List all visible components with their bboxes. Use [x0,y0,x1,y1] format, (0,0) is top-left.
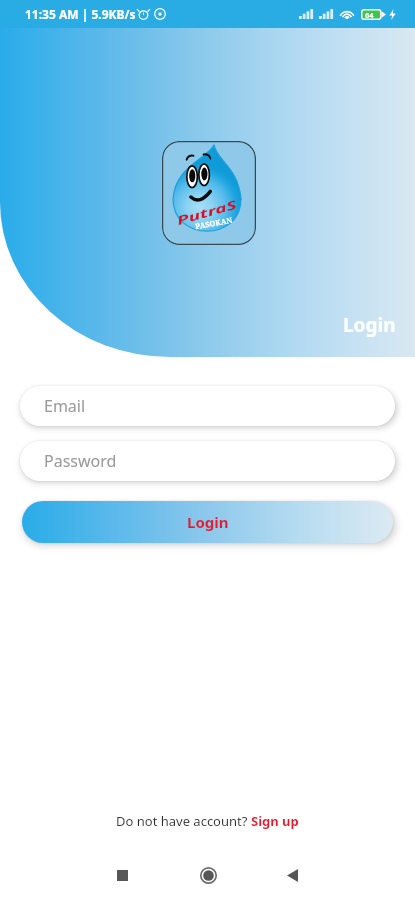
staticText: Login [343,312,396,338]
button[interactable]: Password [20,441,395,481]
staticText: PASOKAN [194,215,234,231]
button[interactable]: Sign up [251,812,299,830]
staticText: Password [44,450,117,472]
button[interactable]: Home [186,853,230,897]
staticText: PutraS [175,196,239,228]
button[interactable]: Recents [100,853,144,897]
button[interactable]: Login [22,501,393,543]
staticText: Sign up [251,812,299,830]
staticText: Do not have account? [116,812,251,830]
staticText: 11:35 AM | 5.9KB/s [25,6,136,22]
staticText: 64 [365,10,374,20]
button[interactable]: Email [20,386,395,426]
button[interactable]: Back [270,853,314,897]
staticText: Email [44,395,86,417]
staticText: Login [187,512,229,532]
